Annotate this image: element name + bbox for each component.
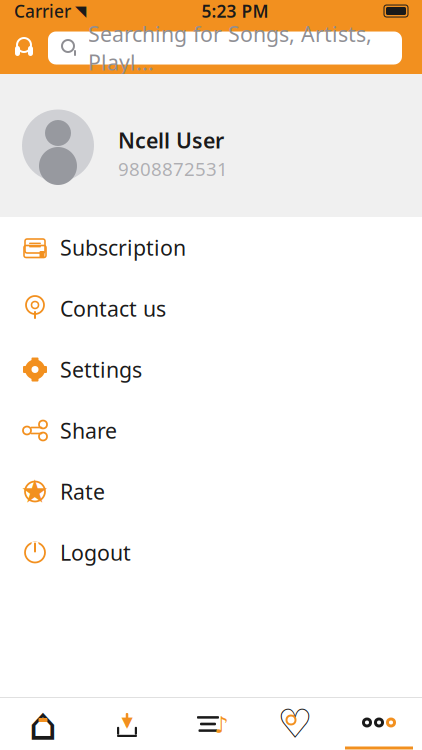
button[interactable]: Favourites: [253, 698, 337, 749]
button[interactable]: Share: [0, 400, 422, 461]
button[interactable]: Logout: [0, 522, 422, 583]
staticText: Carrier: [14, 0, 71, 22]
button[interactable]: Now Playing: [0, 28, 48, 68]
button[interactable]: Settings: [0, 339, 422, 400]
button[interactable]: Searching for Songs, Artists, Playl...: [48, 31, 402, 64]
staticText: ▼: [121, 714, 132, 730]
button[interactable]: Playlists: [169, 698, 253, 749]
button[interactable]: Subscription: [0, 217, 422, 278]
staticText: 9808872531: [118, 156, 228, 181]
staticText: ◥: [75, 3, 86, 19]
button[interactable]: Contact us: [0, 278, 422, 339]
button[interactable]: More: [337, 698, 421, 749]
staticText: ★: [20, 473, 49, 510]
staticText: ♡: [277, 701, 313, 747]
staticText: ♪: [214, 712, 228, 738]
button[interactable]: ★: [0, 461, 422, 522]
staticText: Logout: [60, 538, 131, 567]
staticText: 5:23 PM: [201, 0, 268, 22]
staticText: Subscription: [60, 233, 186, 262]
button[interactable]: Home: [1, 698, 85, 749]
staticText: ⌂: [28, 698, 57, 750]
staticText: Contact us: [60, 294, 166, 323]
staticText: Ncell User: [118, 126, 224, 154]
staticText: Searching for Songs, Artists, Playl...: [88, 20, 372, 76]
staticText: Share: [60, 416, 117, 445]
staticText: Settings: [60, 355, 142, 384]
staticText: Rate: [60, 477, 105, 506]
button[interactable]: Downloads: [85, 698, 169, 749]
